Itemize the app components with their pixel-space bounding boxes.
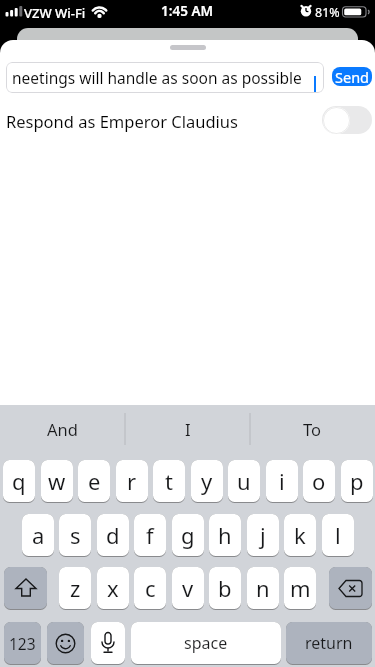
- button[interactable]: n: [247, 567, 279, 609]
- staticText: t: [165, 466, 173, 496]
- button[interactable]: q: [3, 460, 35, 502]
- button[interactable]: b: [209, 567, 241, 609]
- button[interactable]: r: [116, 460, 148, 502]
- staticText: v: [182, 573, 194, 603]
- staticText: w: [48, 466, 66, 496]
- staticText: c: [145, 573, 156, 603]
- button[interactable]: [329, 567, 372, 609]
- button[interactable]: a: [22, 514, 54, 556]
- button[interactable]: w: [41, 460, 73, 502]
- staticText: b: [218, 573, 232, 603]
- button[interactable]: z: [59, 567, 91, 609]
- staticText: 81%: [315, 4, 340, 21]
- staticText: I: [185, 418, 191, 440]
- staticText: VZW Wi-Fi: [24, 4, 86, 22]
- staticText: return: [305, 632, 353, 654]
- staticText: z: [70, 573, 81, 603]
- staticText: n: [256, 573, 270, 603]
- staticText: space: [184, 632, 228, 654]
- staticText: h: [218, 520, 232, 550]
- button[interactable]: h: [209, 514, 241, 556]
- button[interactable]: g: [172, 514, 204, 556]
- button[interactable]: s: [59, 514, 91, 556]
- staticText: a: [32, 520, 45, 550]
- staticText: And: [47, 418, 78, 440]
- button[interactable]: y: [191, 460, 223, 502]
- button[interactable]: m: [284, 567, 316, 609]
- button[interactable]: v: [172, 567, 204, 609]
- button[interactable]: To: [250, 405, 375, 453]
- staticText: o: [312, 466, 326, 496]
- staticText: r: [127, 466, 137, 496]
- staticText: g: [181, 520, 195, 550]
- button[interactable]: Send: [332, 67, 372, 86]
- staticText: 123: [9, 633, 36, 654]
- staticText: j: [260, 520, 266, 550]
- staticText: y: [201, 466, 213, 496]
- button[interactable]: k: [284, 514, 316, 556]
- staticText: x: [107, 573, 119, 603]
- button[interactable]: e: [78, 460, 110, 502]
- button[interactable]: j: [247, 514, 279, 556]
- button[interactable]: c: [134, 567, 166, 609]
- staticText: p: [350, 466, 364, 496]
- button[interactable]: return: [286, 622, 372, 664]
- button[interactable]: p: [341, 460, 373, 502]
- button[interactable]: [47, 622, 84, 664]
- staticText: m: [290, 573, 311, 603]
- staticText: neetings will handle as soon as possible: [12, 67, 309, 88]
- staticText: q: [12, 466, 26, 496]
- button[interactable]: [91, 622, 125, 664]
- staticText: 1:45 AM: [161, 2, 214, 20]
- button[interactable]: f: [134, 514, 166, 556]
- staticText: i: [279, 466, 285, 496]
- button[interactable]: l: [322, 514, 354, 556]
- button[interactable]: o: [303, 460, 335, 502]
- button[interactable]: u: [228, 460, 260, 502]
- button[interactable]: neetings will handle as soon as possible: [6, 62, 324, 93]
- button[interactable]: I: [125, 405, 250, 453]
- staticText: l: [335, 520, 341, 550]
- staticText: u: [237, 466, 251, 496]
- button[interactable]: [4, 567, 47, 609]
- button[interactable]: 123: [4, 622, 41, 664]
- button[interactable]: d: [97, 514, 129, 556]
- staticText: s: [70, 520, 81, 550]
- staticText: k: [294, 520, 306, 550]
- button[interactable]: And: [0, 405, 125, 453]
- button[interactable]: space: [131, 622, 281, 664]
- button[interactable]: [322, 106, 372, 134]
- staticText: f: [146, 520, 154, 550]
- button[interactable]: x: [97, 567, 129, 609]
- staticText: Send: [335, 67, 370, 86]
- button[interactable]: i: [266, 460, 298, 502]
- staticText: e: [88, 466, 101, 496]
- button[interactable]: t: [153, 460, 185, 502]
- staticText: d: [106, 520, 120, 550]
- staticText: To: [303, 418, 322, 440]
- staticText: Respond as Emperor Claudius: [6, 110, 238, 132]
